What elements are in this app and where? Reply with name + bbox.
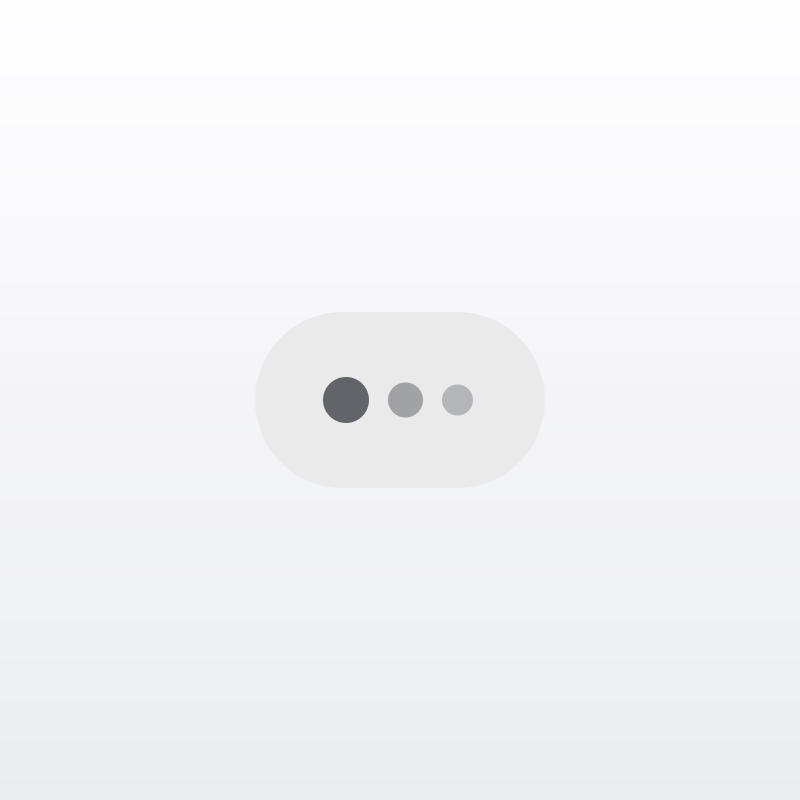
button[interactable]: Typing indicator: [255, 312, 545, 488]
